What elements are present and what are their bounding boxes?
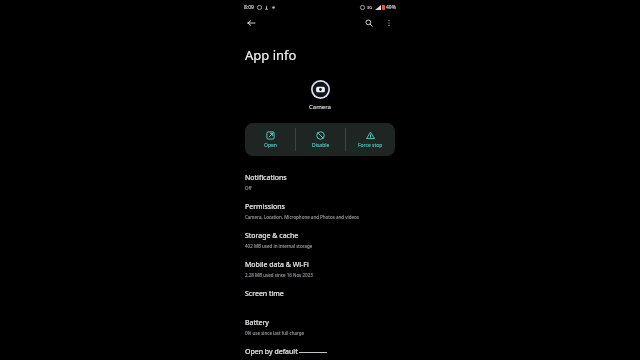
button[interactable]: Disable <box>296 123 345 156</box>
button[interactable]: Search <box>361 15 377 31</box>
staticText: 2.28 MB used since 16 Nov 2023 <box>245 272 313 278</box>
staticText: Camera <box>309 103 331 111</box>
staticText: Force stop <box>358 142 383 149</box>
staticText: Open <box>264 142 277 149</box>
button[interactable]: Screen time <box>237 284 403 313</box>
staticText: Permissions <box>245 202 285 212</box>
button[interactable]: Back <box>243 15 259 31</box>
staticText: 3G <box>367 5 373 10</box>
button[interactable]: Force stop <box>346 123 395 156</box>
staticText: Notifications <box>245 173 287 183</box>
staticText: Battery <box>245 318 269 328</box>
staticText: Screen time <box>245 289 284 299</box>
button[interactable]: More options <box>381 15 397 31</box>
button[interactable]: Battery <box>237 313 403 342</box>
staticText: 49% <box>386 4 396 11</box>
staticText: 0% use since last full charge <box>245 330 305 336</box>
staticText: 402 MB used in internal storage <box>245 243 313 249</box>
button[interactable]: Mobile data & Wi-Fi <box>237 255 403 284</box>
button[interactable]: Permissions <box>237 197 403 226</box>
button[interactable]: Notifications <box>237 168 403 197</box>
button[interactable]: Open by default <box>237 342 403 357</box>
staticText: Mobile data & Wi-Fi <box>245 260 309 270</box>
staticText: Off <box>245 185 252 191</box>
staticText: Disable <box>312 142 330 149</box>
staticText: Storage & cache <box>245 231 299 241</box>
staticText: App info <box>245 46 297 64</box>
staticText: Open by default <box>245 347 298 357</box>
staticText: 8:09 <box>244 4 254 11</box>
staticText: Camera, Location, Microphone and Photos … <box>245 214 359 220</box>
button[interactable]: Open <box>245 123 295 156</box>
button[interactable]: Storage & cache <box>237 226 403 255</box>
